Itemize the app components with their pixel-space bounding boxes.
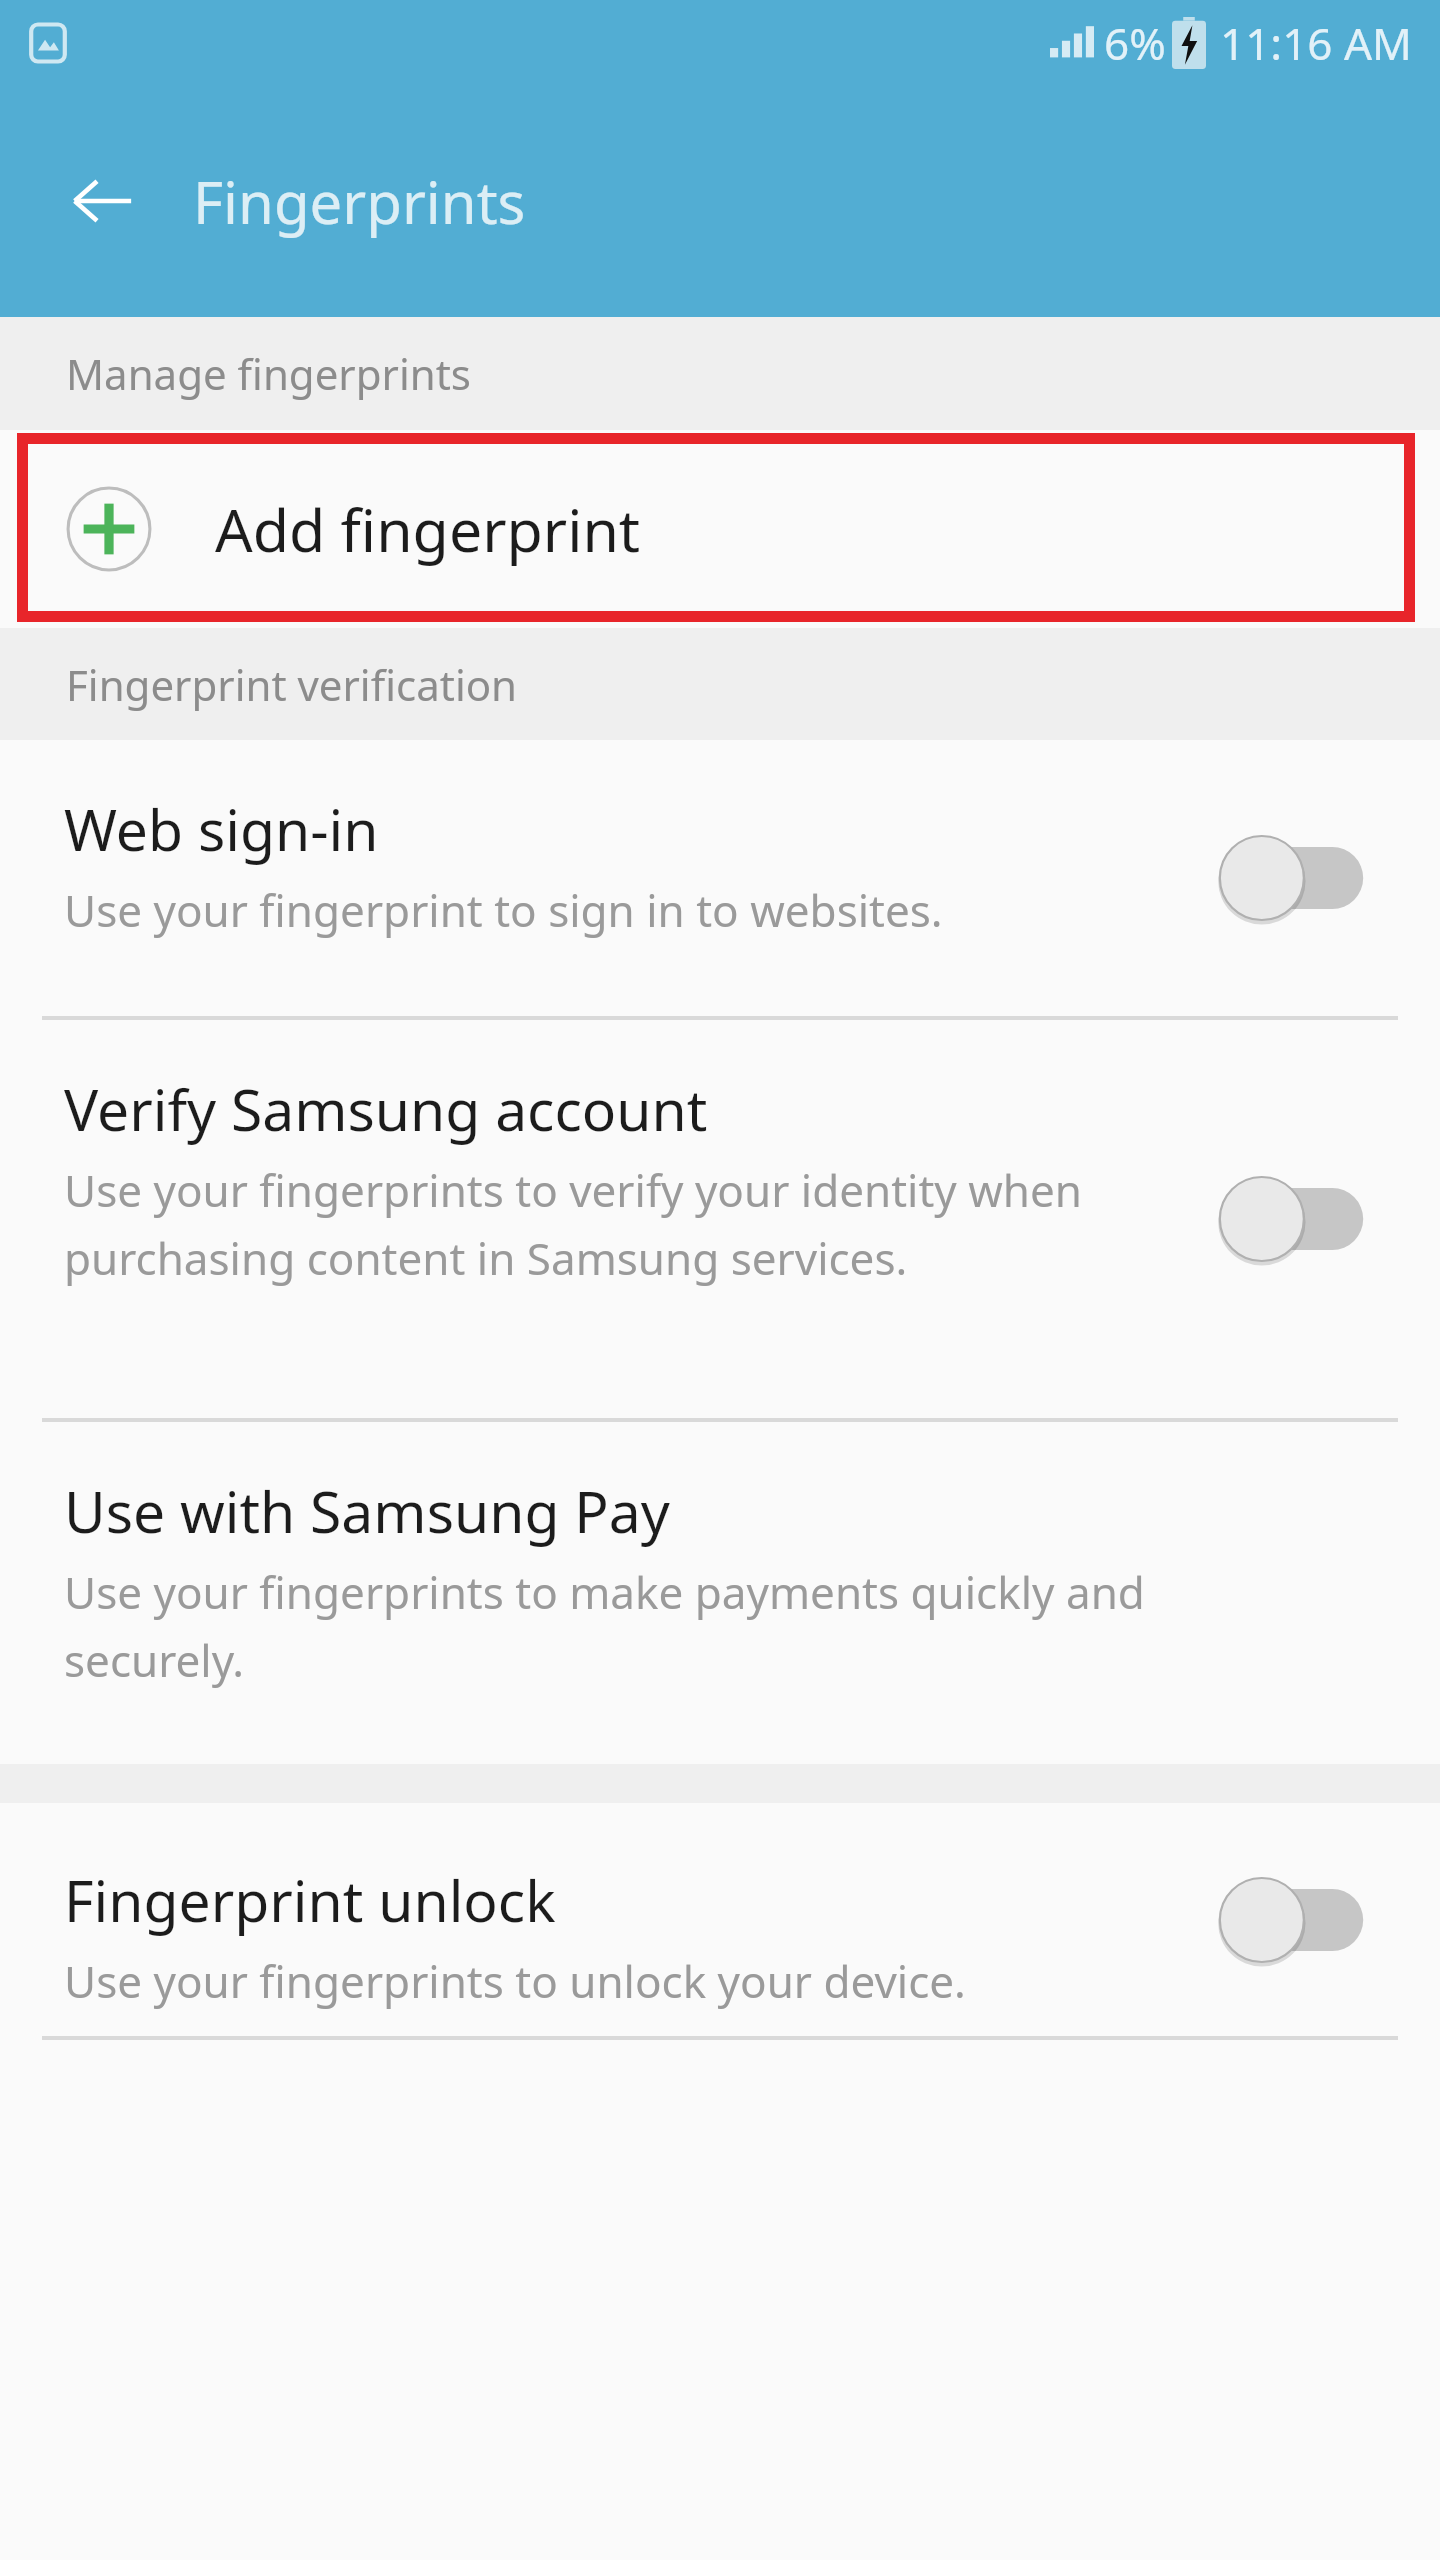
staticText: 6% xyxy=(1104,13,1166,73)
button[interactable]: Back xyxy=(60,159,144,243)
staticText: 11:16 AM xyxy=(1220,13,1412,73)
staticText: Use your fingerprints to unlock your dev… xyxy=(64,1951,966,2011)
button[interactable]: Add fingerprint xyxy=(0,430,1440,628)
staticText: Use your fingerprints to make payments q… xyxy=(64,1562,1174,1690)
button[interactable]: Verify Samsung account xyxy=(0,1020,1440,1418)
staticText: Use with Samsung Pay xyxy=(64,1472,670,1550)
staticText: Fingerprint verification xyxy=(66,656,518,713)
button[interactable]: Toggle xyxy=(1208,1870,1368,1970)
staticText: Manage fingerprints xyxy=(66,345,471,402)
staticText: Fingerprints xyxy=(193,162,526,241)
button[interactable]: Web sign-in xyxy=(0,740,1440,1016)
button[interactable]: Toggle xyxy=(1208,828,1368,928)
staticText: Use your fingerprints to verify your ide… xyxy=(64,1160,1174,1288)
staticText: Add fingerprint xyxy=(215,489,641,569)
button[interactable]: Toggle xyxy=(1208,1169,1368,1269)
button[interactable]: Fingerprint unlock xyxy=(0,1803,1440,2036)
staticText: Use your fingerprint to sign in to websi… xyxy=(64,880,943,940)
staticText: Verify Samsung account xyxy=(64,1070,708,1148)
staticText: Fingerprint unlock xyxy=(64,1861,556,1939)
staticText: Web sign-in xyxy=(64,790,379,868)
button[interactable]: Use with Samsung Pay xyxy=(0,1422,1440,1764)
